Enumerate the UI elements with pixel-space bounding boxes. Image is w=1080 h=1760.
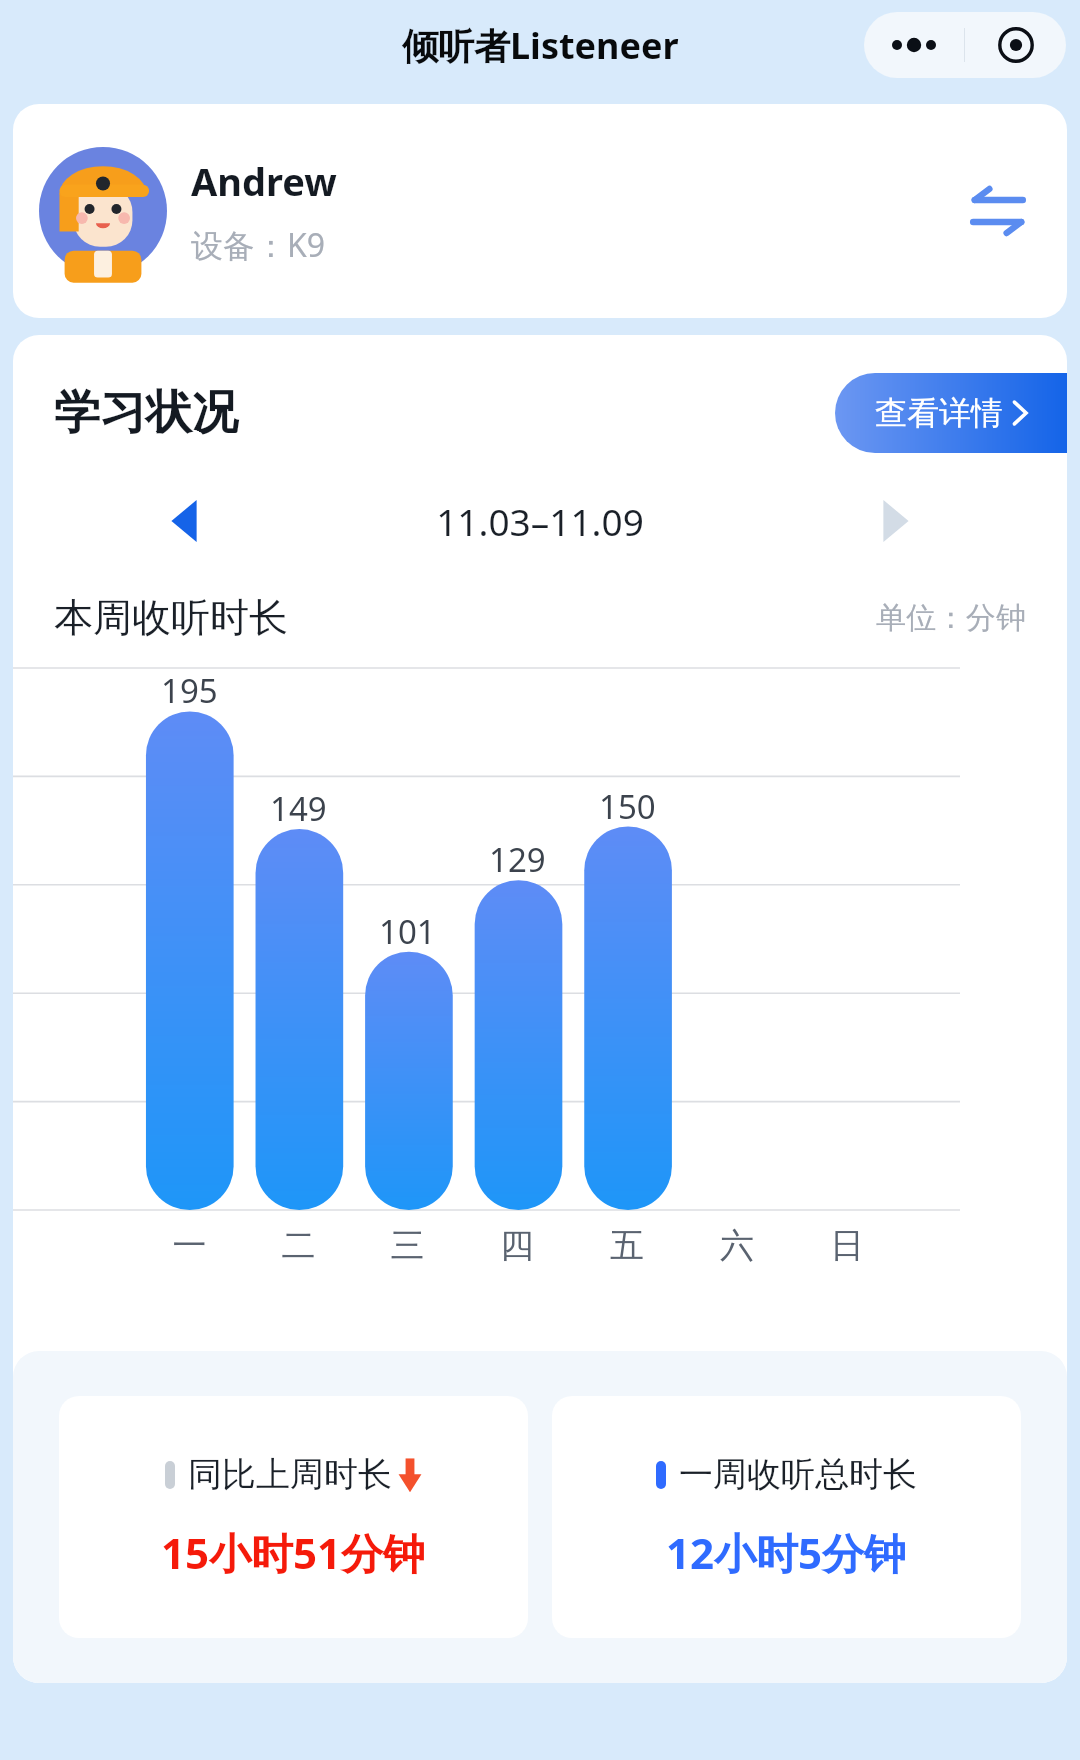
staticText: 五 bbox=[572, 1224, 682, 1267]
button[interactable]: 同比上周时长 bbox=[59, 1396, 528, 1638]
staticText: 同比上周时长 bbox=[188, 1453, 392, 1496]
staticText: 150 bbox=[599, 784, 656, 829]
staticText: 195 bbox=[161, 668, 218, 713]
button[interactable]: Close bbox=[965, 12, 1066, 78]
button[interactable]: Previous week bbox=[153, 490, 215, 552]
staticText: Andrew bbox=[191, 155, 337, 207]
staticText: 101 bbox=[379, 909, 436, 954]
staticText: 11.03–11.09 bbox=[215, 496, 865, 546]
button[interactable]: 查看详情 bbox=[835, 373, 1067, 453]
staticText: 四 bbox=[462, 1224, 572, 1267]
staticText: 15小时51分钟 bbox=[161, 1524, 426, 1581]
staticText: 本周收听时长 bbox=[54, 593, 288, 642]
staticText: 学习状况 bbox=[54, 384, 238, 442]
staticText: 129 bbox=[489, 837, 546, 882]
staticText: 六 bbox=[682, 1224, 792, 1267]
button[interactable]: More options bbox=[864, 12, 964, 78]
staticText: 二 bbox=[244, 1224, 353, 1267]
staticText: 日 bbox=[792, 1224, 902, 1267]
button[interactable]: Switch device bbox=[955, 168, 1041, 254]
staticText: 12小时5分钟 bbox=[666, 1524, 907, 1581]
button[interactable]: Next week bbox=[865, 490, 927, 552]
staticText: 单位：分钟 bbox=[876, 599, 1026, 637]
button[interactable]: Andrew bbox=[13, 104, 1067, 318]
staticText: 149 bbox=[270, 786, 327, 831]
button[interactable]: 一周收听总时长 bbox=[552, 1396, 1021, 1638]
staticText: 一周收听总时长 bbox=[679, 1453, 917, 1496]
staticText: 查看详情 bbox=[875, 393, 1003, 433]
staticText: 一 bbox=[135, 1224, 244, 1267]
staticText: 三 bbox=[353, 1224, 462, 1267]
staticText: 倾听者Listeneer bbox=[402, 21, 679, 70]
staticText: 设备：K9 bbox=[191, 223, 326, 267]
